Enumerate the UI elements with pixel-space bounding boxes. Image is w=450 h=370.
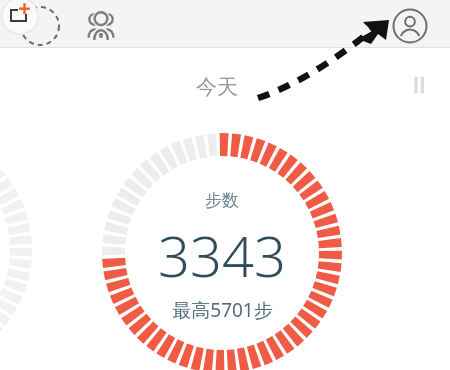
button[interactable]: Friends [78,7,124,43]
staticText: 最高5701步 [172,297,273,323]
staticText: 步数 [205,190,239,211]
button[interactable]: Pause [404,70,434,100]
staticText: 3343 [158,217,286,293]
button[interactable]: 今天 [196,74,238,100]
button[interactable]: Profile [390,6,430,46]
